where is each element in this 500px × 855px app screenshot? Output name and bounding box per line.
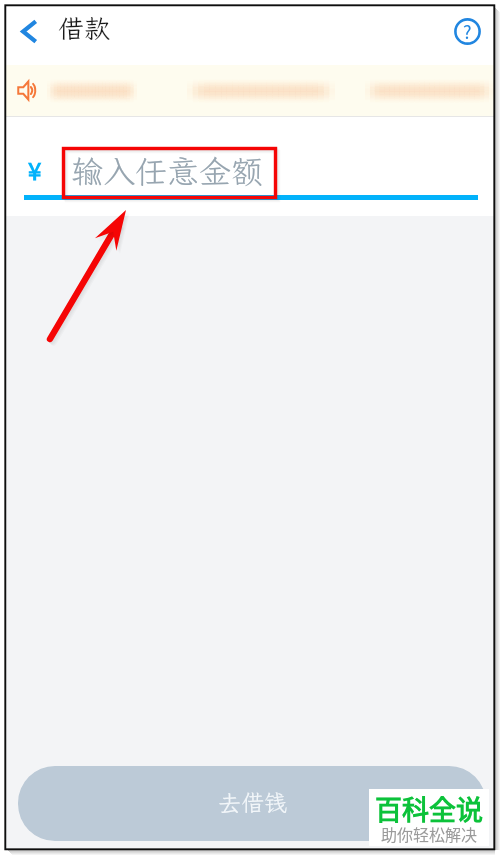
staticText: 助你轻松解决 xyxy=(369,822,489,845)
staticText: 百科全说 xyxy=(369,789,489,828)
staticText: ? xyxy=(463,18,472,44)
button[interactable]: Back xyxy=(7,2,51,61)
staticText: 去借钱 xyxy=(218,787,287,817)
staticText: ¥ xyxy=(28,152,42,187)
button[interactable]: Help xyxy=(442,2,492,61)
button[interactable]: 输入任意金额 xyxy=(71,147,301,195)
button[interactable]: 去借钱 xyxy=(18,766,486,841)
staticText: 输入任意金额 xyxy=(71,150,264,192)
staticText: 借款 xyxy=(58,11,111,45)
button[interactable] xyxy=(6,65,494,116)
